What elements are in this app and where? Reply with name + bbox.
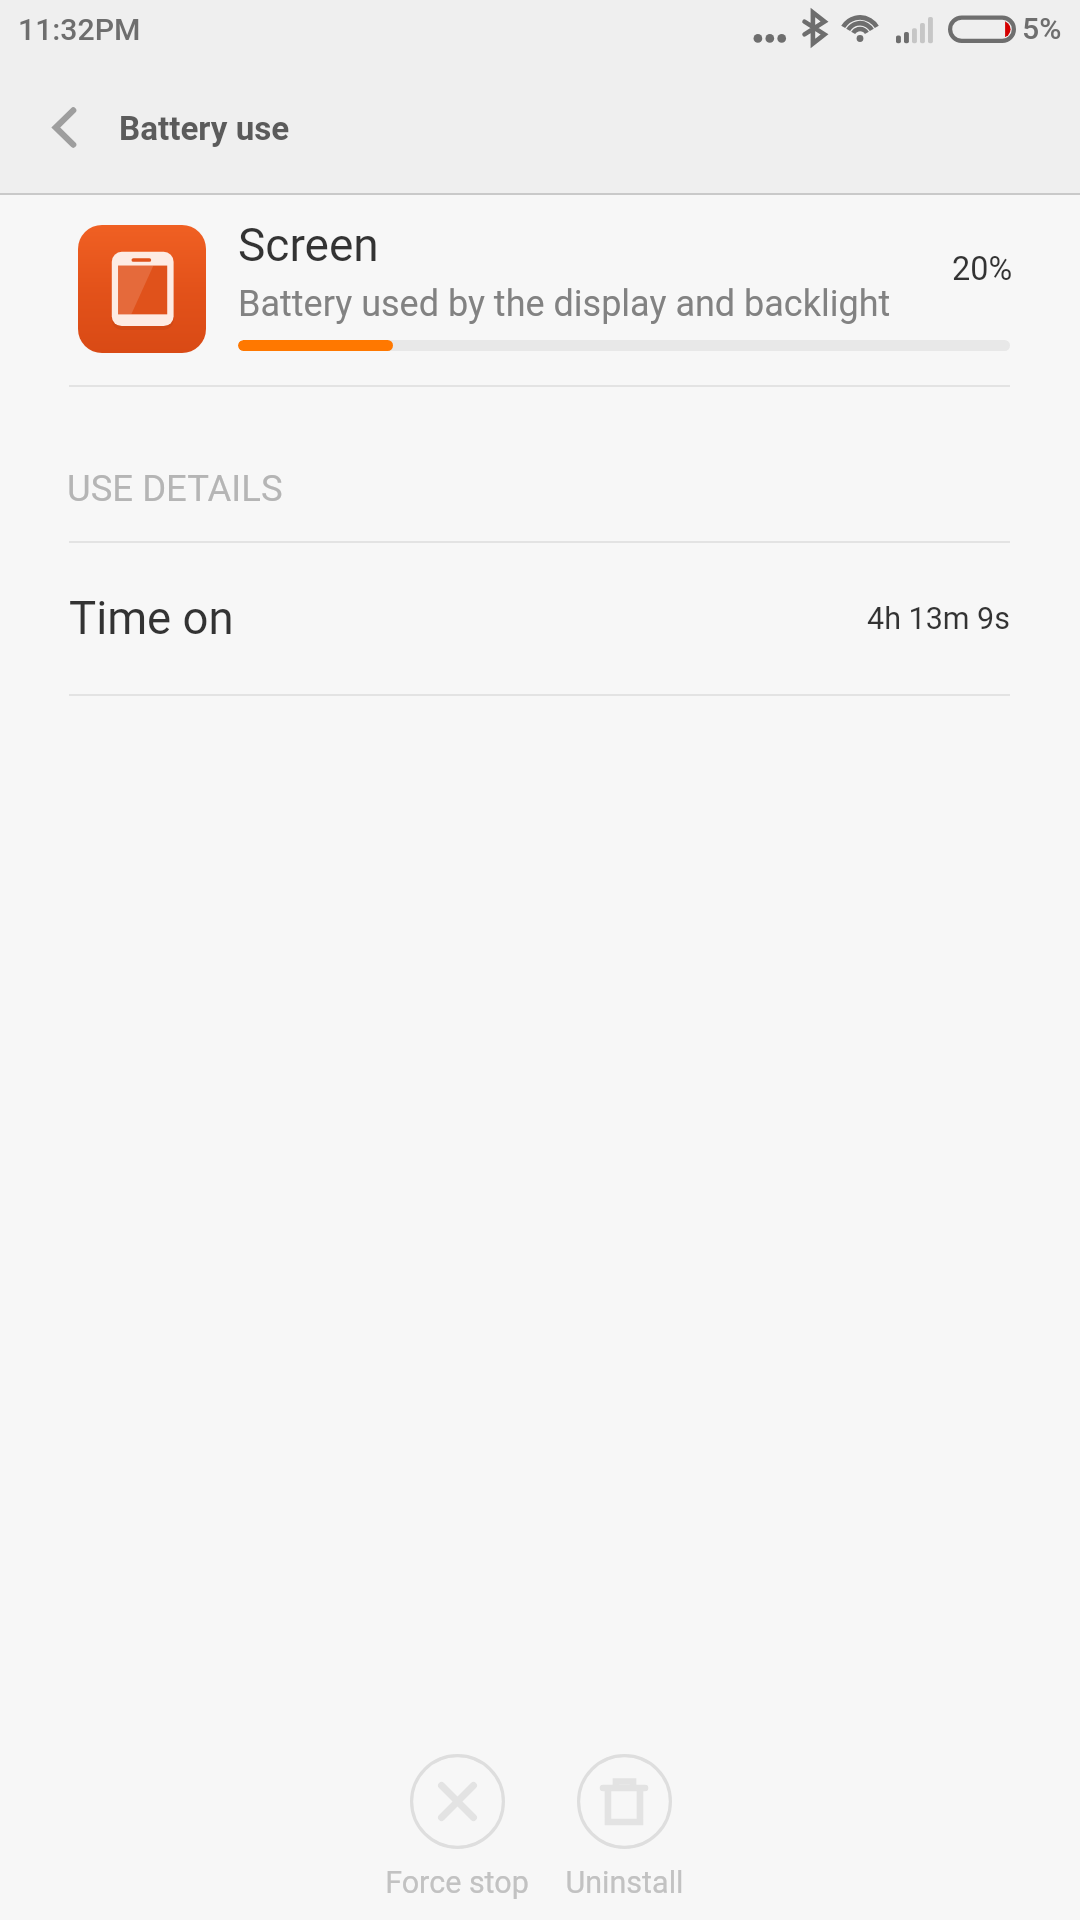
button[interactable]: Force stop (372, 1754, 542, 1901)
button[interactable]: Screen (0, 195, 1080, 385)
staticText: 20% (952, 250, 1013, 288)
button[interactable]: Back (4, 60, 124, 194)
staticText: 4h 13m 9s (867, 601, 1010, 637)
staticText: Battery use (119, 109, 290, 148)
staticText: USE DETAILS (67, 467, 283, 510)
staticText: Force stop (385, 1865, 529, 1901)
staticText: 5% (1022, 11, 1062, 46)
staticText: Screen (238, 218, 379, 272)
staticText: 11:32PM (18, 12, 141, 47)
button[interactable]: Uninstall (539, 1754, 709, 1901)
staticText: Uninstall (565, 1865, 684, 1901)
staticText: Battery used by the display and backligh… (238, 283, 891, 325)
button[interactable]: Time on (0, 543, 1080, 694)
staticText: Time on (69, 592, 234, 645)
